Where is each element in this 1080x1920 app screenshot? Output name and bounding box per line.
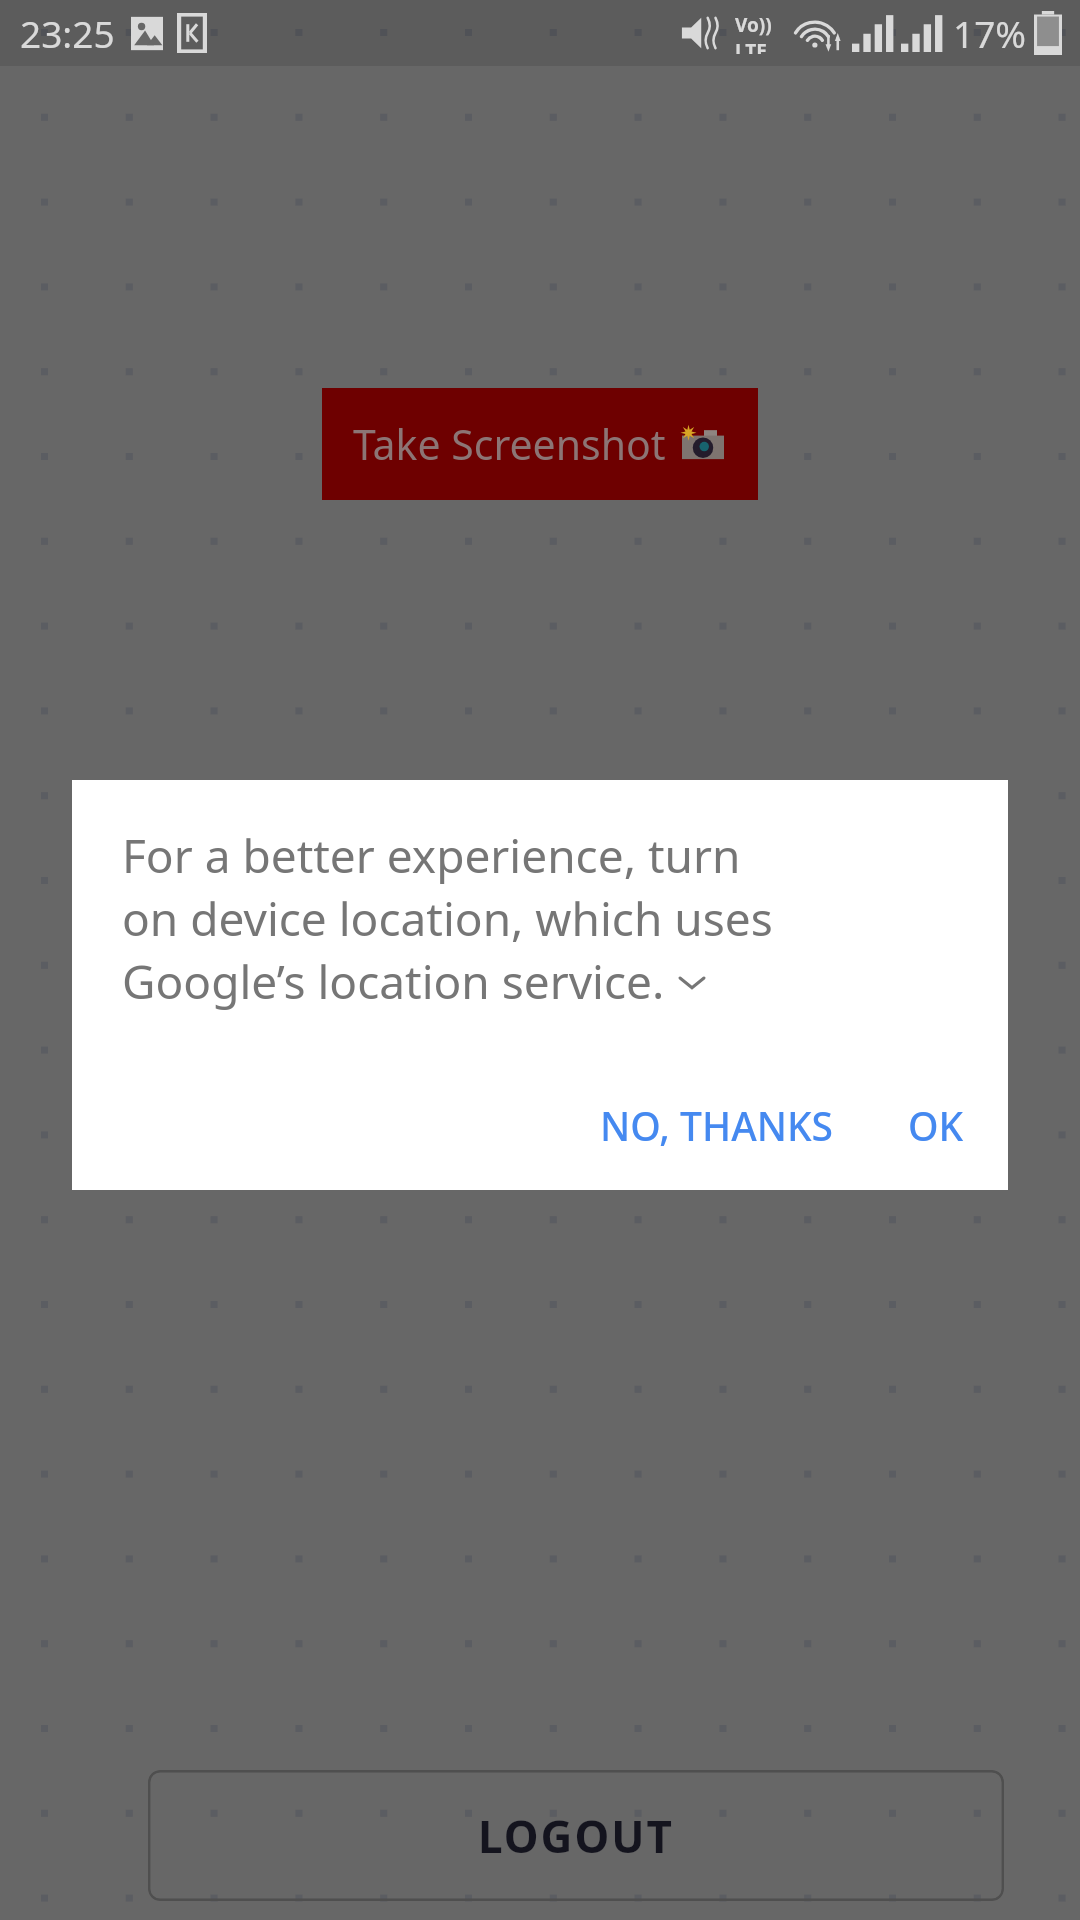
other: Expand details xyxy=(677,971,707,993)
staticText: Take Screenshot xyxy=(353,416,666,472)
staticText: on device location, which uses xyxy=(122,887,773,950)
staticText: Google’s location service. xyxy=(122,950,665,1013)
button[interactable]: OK xyxy=(886,1075,986,1176)
staticText: LTE xyxy=(735,38,767,54)
staticText: Vo)) xyxy=(735,12,772,38)
staticText: NO, THANKS xyxy=(600,1099,834,1152)
staticText: 23:25 xyxy=(20,8,115,58)
staticText: LOGOUT xyxy=(478,1806,674,1866)
staticText: 17% xyxy=(953,8,1027,58)
button[interactable]: LOGOUT xyxy=(148,1770,1004,1901)
button[interactable]: NO, THANKS xyxy=(578,1075,856,1176)
staticText: For a better experience, turn xyxy=(122,824,741,887)
staticText: OK xyxy=(908,1099,964,1152)
button[interactable]: Take Screenshot xyxy=(322,388,758,500)
